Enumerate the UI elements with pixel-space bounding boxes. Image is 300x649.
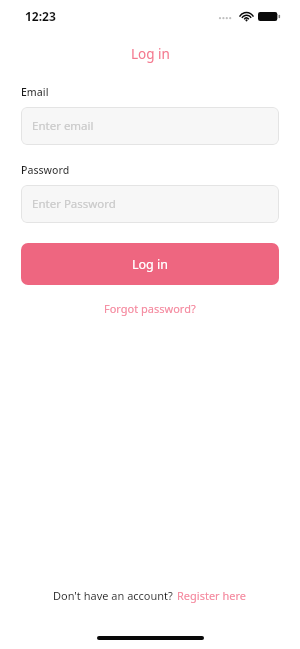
staticText: Register here — [177, 588, 247, 603]
button[interactable]: Log in — [21, 243, 279, 285]
button[interactable]: Register here — [177, 588, 247, 603]
button[interactable]: Forgot password? — [98, 299, 202, 318]
staticText: Log in — [132, 256, 169, 273]
staticText: Enter Password — [32, 196, 116, 212]
staticText: 12:23 — [25, 8, 56, 24]
staticText: Log in — [131, 45, 170, 63]
staticText: Don't have an account? — [53, 588, 173, 603]
staticText: Enter email — [32, 118, 94, 134]
staticText: Password — [21, 163, 70, 177]
staticText: Email — [21, 85, 49, 99]
button[interactable]: Enter email — [21, 107, 279, 145]
staticText: Forgot password? — [104, 301, 196, 316]
button[interactable]: Enter Password — [21, 185, 279, 223]
